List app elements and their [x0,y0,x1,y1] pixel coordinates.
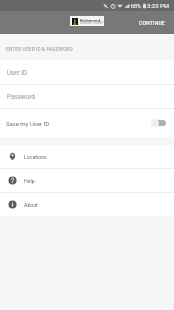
button[interactable]: CONTINUE [130,15,174,31]
button[interactable]: Help [0,169,174,192]
button[interactable]: Richmond logo [70,16,104,26]
button[interactable]: About [0,193,174,216]
staticText: User ID [7,69,28,76]
staticText: Save my User ID [6,120,50,127]
staticText: Richmond [80,18,100,23]
staticText: Locations [24,154,47,160]
staticText: Password [7,93,35,100]
staticText: Help [24,178,35,184]
staticText: 68% [131,3,142,9]
staticText: 3:23 PM [147,2,170,9]
button[interactable]: Save my User ID [0,109,174,137]
staticText: REGIONAL TRANSIT [80,22,104,25]
button[interactable]: Password [0,85,174,108]
button[interactable]: User ID [0,60,174,84]
staticText: ENTER USER ID & PASSWORD [6,47,73,53]
staticText: About [24,202,38,208]
staticText: CONTINUE [139,20,165,26]
button[interactable]: Locations [0,145,174,168]
